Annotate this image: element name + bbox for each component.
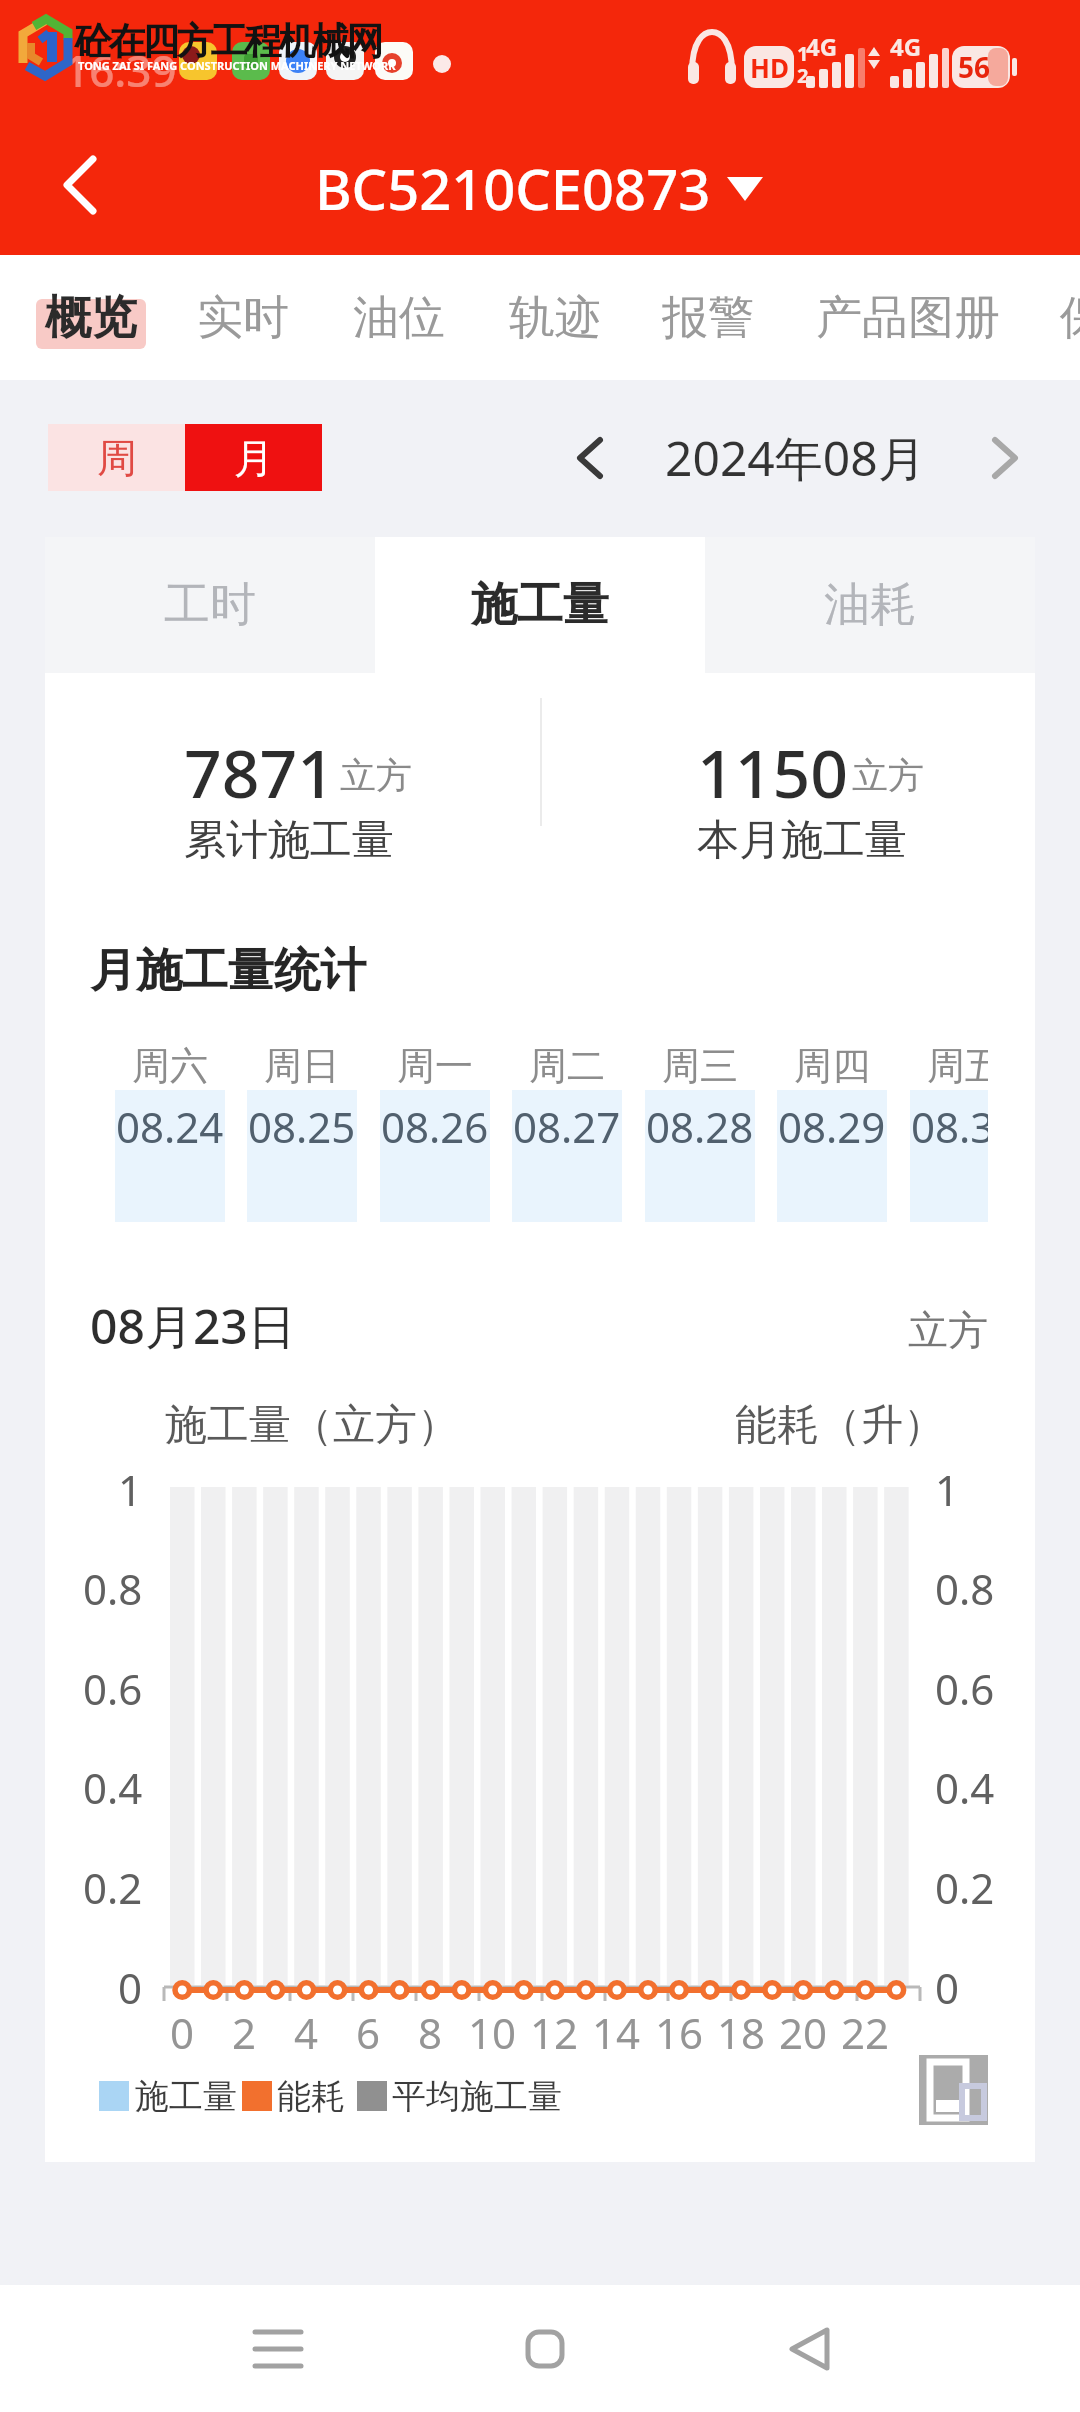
staticText: 08.25 [248,1098,356,1146]
staticText: 0.2 [935,1859,995,1911]
staticText: 报警 [662,289,754,347]
staticText: 1 [797,40,809,67]
staticText: 0.4 [935,1759,995,1811]
staticText: HD [750,50,789,85]
staticText: 12 [530,2004,579,2056]
staticText: 0.8 [83,1560,143,1612]
staticText: 周五 [927,1042,988,1090]
button[interactable]: 08.27 [512,1090,622,1222]
staticText: 能耗（升） [735,1399,945,1452]
button[interactable]: BC5210CE0873 [0,145,1080,230]
staticText: 实时 [197,289,289,347]
staticText: 0 [935,1959,960,2011]
button[interactable]: 08.30 [910,1090,988,1222]
button[interactable]: 轨迹 [492,255,617,380]
button[interactable]: 08.25 [247,1090,357,1222]
staticText: 周日 [264,1042,340,1090]
button[interactable] [475,2285,615,2412]
staticText: 1 [118,1461,143,1513]
staticText: 保 [1060,289,1080,347]
staticText: 08.29 [778,1098,886,1146]
staticText: 8 [418,2004,443,2056]
button[interactable]: 概览 [28,255,153,380]
staticText: 1 [935,1461,960,1513]
staticText: 油耗 [824,576,916,634]
staticText: 立方 [852,753,924,798]
staticText: 0.2 [83,1859,143,1911]
button[interactable] [40,140,120,230]
button[interactable]: 周 [48,424,185,491]
staticText: 工时 [164,576,256,634]
staticText: 08.30 [911,1098,988,1146]
staticText: 20 [779,2004,828,2056]
button[interactable]: 保 [1058,255,1080,380]
button[interactable] [208,2285,348,2412]
button[interactable] [560,424,620,491]
staticText: 7871 [184,727,336,817]
staticText: 0.6 [83,1660,143,1712]
staticText: 6 [356,2004,381,2056]
staticText: 08.27 [513,1098,621,1146]
staticText: 08.28 [646,1098,754,1146]
staticText: 月施工量统计 [90,942,366,1000]
staticText: 施工量 [471,576,609,634]
staticText: 4 [294,2004,319,2056]
staticText: 概览 [45,289,137,347]
staticText: 18 [717,2004,766,2056]
staticText: 施工量（立方） [165,1399,459,1452]
button[interactable]: 油耗 [705,537,1035,673]
staticText: 立方 [908,1305,988,1355]
staticText: 4G [806,30,838,63]
staticText: 1150 [697,727,849,817]
staticText: 本月施工量 [697,814,907,867]
button[interactable]: 报警 [645,255,770,380]
button[interactable]: 实时 [180,255,305,380]
staticText: 砼在四方工程机械网 [76,18,382,65]
staticText: 轨迹 [509,289,601,347]
staticText: 4G [890,30,922,63]
staticText: 16 [655,2004,704,2056]
staticText: 10 [468,2004,517,2056]
staticText: 施工量 [135,2075,237,2118]
staticText: 0 [170,2004,195,2056]
staticText: 周一 [397,1042,473,1090]
staticText: TONG ZAI SI FANG CONSTRUCTION MACHINERY … [78,58,396,73]
button[interactable]: 工时 [45,537,375,673]
button[interactable] [919,2055,988,2125]
button[interactable]: 08.26 [380,1090,490,1222]
staticText: 56 [958,48,991,86]
staticText: 周三 [662,1042,738,1090]
staticText: 油位 [353,289,445,347]
button[interactable]: 08.28 [645,1090,755,1222]
staticText: 平均施工量 [392,2075,562,2118]
button[interactable]: 08.24 [115,1090,225,1222]
staticText: 08.26 [381,1098,489,1146]
button[interactable]: 产品图册 [800,255,1015,380]
staticText: 月 [234,433,274,483]
staticText: 08月23日 [90,1293,296,1359]
staticText: 周二 [529,1042,605,1090]
staticText: 累计施工量 [184,814,394,867]
staticText: 08.24 [116,1098,224,1146]
button[interactable]: 08.29 [777,1090,887,1222]
button[interactable] [975,424,1035,491]
staticText: 16:39 [64,40,177,100]
staticText: 产品图册 [816,289,1000,347]
button[interactable]: 施工量 [375,537,705,673]
staticText: 周四 [794,1042,870,1090]
staticText: 0.4 [83,1759,143,1811]
staticText: 2 [232,2004,257,2056]
staticText: 0.8 [935,1560,995,1612]
staticText: 立方 [340,753,412,798]
staticText: 0.6 [935,1660,995,1712]
staticText: 周六 [132,1042,208,1090]
staticText: 2024年08月 [665,425,926,491]
button[interactable]: 月 [185,424,322,491]
staticText: 2 [797,62,809,89]
staticText: 能耗 [277,2075,345,2118]
staticText: 周 [97,433,137,483]
button[interactable]: 油位 [336,255,461,380]
button[interactable] [740,2285,880,2412]
staticText: BC5210CE0873 [315,150,711,226]
staticText: 22 [841,2004,890,2056]
